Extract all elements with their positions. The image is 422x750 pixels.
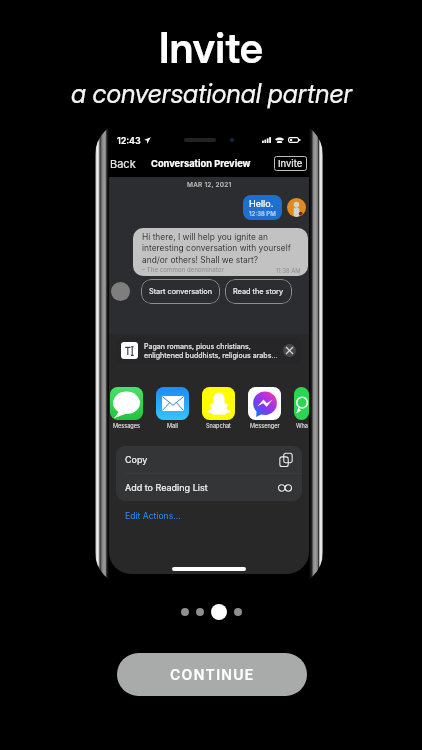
staticText: enlightened buddhists, religious arabs… bbox=[144, 351, 278, 360]
button[interactable]: Messenger bbox=[248, 387, 281, 430]
button[interactable]: Snapchat bbox=[202, 387, 235, 430]
staticText: CONTINUE bbox=[170, 666, 255, 683]
button[interactable]: Mail bbox=[156, 387, 189, 430]
staticText: Copy bbox=[125, 454, 148, 465]
staticText: Wha bbox=[296, 423, 308, 430]
staticText: – The common denominator bbox=[142, 266, 224, 274]
staticText: Invite bbox=[278, 158, 303, 169]
staticText: Back bbox=[110, 157, 136, 170]
staticText: Mail bbox=[167, 423, 178, 430]
button[interactable]: Back bbox=[109, 154, 137, 173]
staticText: Hello. bbox=[249, 198, 274, 209]
staticText: Pagan romans, pious christians, bbox=[144, 342, 251, 351]
button[interactable]: Edit Actions… bbox=[125, 510, 181, 522]
staticText: Invite bbox=[159, 22, 263, 64]
button[interactable]: Close bbox=[283, 344, 296, 357]
button[interactable]: Wha bbox=[294, 387, 309, 430]
button[interactable]: Invite bbox=[274, 156, 307, 171]
button[interactable]: Start conversation bbox=[141, 279, 220, 304]
staticText: Messenger bbox=[250, 423, 280, 430]
button[interactable]: Add to Reading List bbox=[116, 474, 302, 501]
button[interactable]: CONTINUE bbox=[117, 653, 307, 696]
staticText: Messages bbox=[113, 423, 141, 430]
staticText: 12:43 bbox=[117, 135, 141, 146]
button[interactable]: Messages bbox=[110, 387, 143, 430]
staticText: Snapchat bbox=[206, 423, 231, 430]
staticText: 12:38 PM bbox=[249, 210, 276, 217]
staticText: a conversational partner bbox=[71, 77, 352, 109]
staticText: Edit Actions… bbox=[125, 511, 181, 521]
button[interactable]: Read the story bbox=[225, 279, 292, 304]
staticText: MAR 12, 2021 bbox=[187, 181, 232, 189]
staticText: 11:38 AM bbox=[276, 267, 301, 274]
staticText: Add to Reading List bbox=[125, 482, 208, 493]
staticText: Hi there, I will help you ignite an inte… bbox=[142, 232, 301, 265]
button[interactable]: Copy bbox=[116, 446, 302, 473]
staticText: Read the story bbox=[233, 287, 284, 296]
staticText: Start conversation bbox=[149, 287, 212, 296]
staticText: Conversation Preview bbox=[151, 158, 251, 169]
